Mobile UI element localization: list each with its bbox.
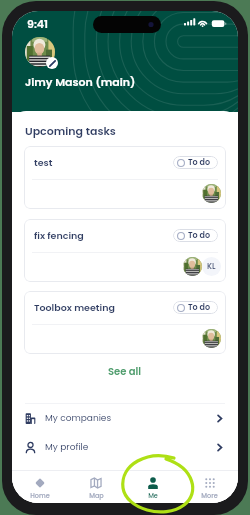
button[interactable]: Home — [12, 471, 68, 500]
button[interactable]: To do — [173, 156, 218, 169]
staticText: My profile — [45, 441, 89, 454]
staticText: To do — [188, 157, 211, 168]
button[interactable]: Profile photo — [25, 37, 55, 67]
button[interactable]: test — [24, 146, 226, 209]
staticText: Home — [30, 491, 50, 500]
button[interactable]: fix fencing — [24, 219, 226, 282]
button[interactable]: See all — [102, 361, 148, 381]
staticText: Upcoming tasks — [25, 123, 116, 138]
staticText: My companies — [45, 412, 112, 425]
staticText: To do — [188, 302, 211, 313]
button[interactable]: Edit profile photo — [46, 57, 58, 69]
staticText: KL — [207, 261, 216, 272]
button[interactable]: Toolbox meeting — [24, 291, 226, 354]
staticText: Toolbox meeting — [34, 301, 115, 314]
button[interactable]: Me — [124, 471, 181, 500]
staticText: Map — [89, 491, 104, 500]
staticText: test — [34, 156, 53, 169]
button[interactable]: To do — [173, 301, 218, 314]
staticText: To do — [188, 230, 211, 241]
staticText: Jimy Mason (main) — [25, 74, 136, 89]
staticText: See all — [108, 364, 142, 378]
staticText: More — [201, 491, 218, 500]
staticText: fix fencing — [34, 229, 84, 242]
staticText: Me — [148, 491, 158, 500]
button[interactable]: My companies — [12, 404, 238, 433]
button[interactable]: To do — [173, 229, 218, 242]
button[interactable]: Map — [68, 471, 124, 500]
staticText: 9:41 — [27, 16, 49, 31]
button[interactable]: More — [181, 471, 238, 500]
button[interactable]: My profile — [12, 433, 238, 462]
